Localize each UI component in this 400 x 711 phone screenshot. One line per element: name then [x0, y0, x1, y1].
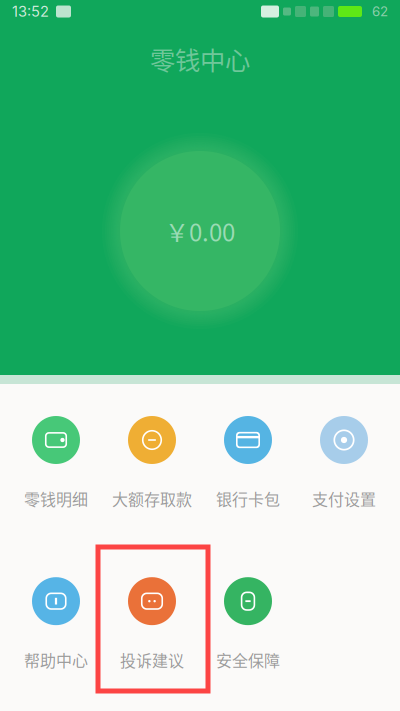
button[interactable]: 投诉建议: [104, 577, 200, 671]
button[interactable]: 银行卡包: [200, 416, 296, 510]
button[interactable]: 支付设置: [296, 416, 392, 510]
staticText: 大额存取款: [112, 487, 192, 510]
button[interactable]: 零钱明细: [8, 416, 104, 510]
button[interactable]: 帮助中心: [8, 577, 104, 671]
staticText: 银行卡包: [216, 487, 280, 510]
button[interactable]: 大额存取款: [104, 416, 200, 510]
staticText: ￥0.00: [165, 214, 235, 248]
staticText: 支付设置: [312, 487, 376, 510]
staticText: 零钱中心: [150, 41, 250, 77]
staticText: 帮助中心: [24, 648, 88, 671]
staticText: 62: [372, 3, 388, 19]
staticText: 零钱明细: [24, 487, 88, 510]
button[interactable]: 零钱中心: [150, 38, 250, 80]
staticText: 安全保障: [216, 648, 280, 671]
button[interactable]: 安全保障: [200, 577, 296, 671]
staticText: 投诉建议: [120, 648, 184, 671]
staticText: 13:52: [12, 3, 49, 20]
